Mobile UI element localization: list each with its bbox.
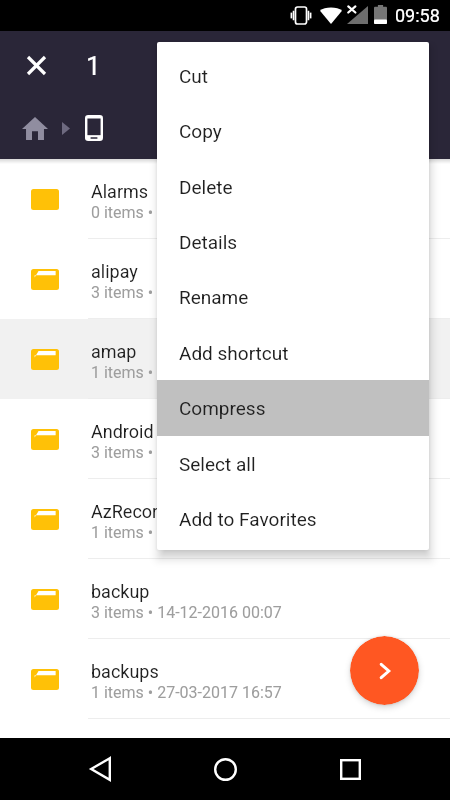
staticText: 0 items • 17-03-2017 16:58 bbox=[91, 203, 282, 222]
button[interactable]: Internal storage bbox=[70, 104, 118, 152]
button[interactable]: Compress bbox=[157, 380, 429, 436]
button[interactable]: Add to Favorites bbox=[157, 491, 429, 547]
staticText: 1 items • 28-03-2017 22:18 bbox=[91, 523, 282, 542]
button[interactable]: Android bbox=[0, 399, 450, 479]
button[interactable]: AzRecorderFree bbox=[0, 479, 450, 559]
staticText: Details bbox=[179, 231, 238, 253]
button[interactable]: Rename bbox=[157, 269, 429, 325]
button[interactable]: Paste bbox=[350, 636, 419, 705]
button[interactable]: Add shortcut bbox=[157, 325, 429, 380]
staticText: 1 bbox=[86, 51, 101, 81]
staticText: 3 items • 14-12-2016 00:07 bbox=[91, 603, 282, 622]
button[interactable]: backup bbox=[0, 559, 450, 639]
staticText: 09:58 bbox=[395, 5, 440, 26]
staticText: Add to Favorites bbox=[179, 508, 317, 530]
button[interactable]: alipay bbox=[0, 239, 450, 319]
staticText: 1 items • 29-03-2017 09:21 bbox=[91, 363, 282, 382]
staticText: Select all bbox=[179, 453, 256, 475]
button[interactable]: Details bbox=[157, 214, 429, 269]
staticText: Rename bbox=[179, 286, 249, 308]
button[interactable]: Select all bbox=[157, 436, 429, 491]
button[interactable]: Recent apps bbox=[320, 739, 380, 799]
staticText: backups bbox=[91, 661, 159, 682]
staticText: 1 items • 27-03-2017 16:57 bbox=[91, 683, 282, 702]
staticText: alipay bbox=[91, 261, 138, 282]
button[interactable]: Close selection bbox=[12, 41, 60, 89]
button[interactable]: Alarms bbox=[0, 159, 450, 239]
staticText: 3 items • 14-12-2016 00:01 bbox=[91, 443, 282, 462]
staticText: backup bbox=[91, 581, 150, 602]
staticText: 3 items • 20-03-2017 11:10 bbox=[91, 283, 282, 302]
staticText: Delete bbox=[179, 176, 233, 198]
button[interactable]: Home bbox=[11, 104, 59, 152]
button[interactable]: Home bbox=[195, 739, 255, 799]
button[interactable]: Copy bbox=[157, 103, 429, 159]
staticText: amap bbox=[91, 341, 137, 362]
button[interactable]: Cut bbox=[157, 48, 429, 103]
staticText: AzRecorderFree bbox=[91, 501, 219, 522]
staticText: Compress bbox=[179, 397, 266, 419]
button[interactable]: amap bbox=[0, 319, 450, 399]
staticText: Copy bbox=[179, 120, 222, 142]
staticText: Cut bbox=[179, 65, 209, 87]
staticText: Alarms bbox=[91, 181, 149, 202]
staticText: Add shortcut bbox=[179, 342, 289, 364]
button[interactable]: backups bbox=[0, 639, 450, 719]
button[interactable]: Delete bbox=[157, 159, 429, 214]
staticText: Android bbox=[91, 421, 154, 442]
button[interactable]: Back bbox=[70, 739, 130, 799]
